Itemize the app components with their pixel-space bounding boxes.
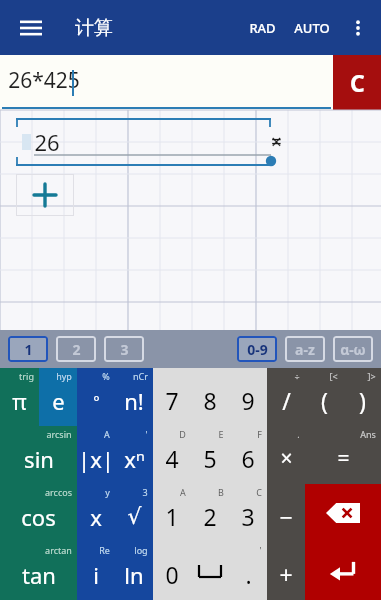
button[interactable]: Menu (14, 11, 48, 45)
button[interactable]: Re (77, 542, 115, 600)
staticText: . (297, 428, 300, 440)
staticText: ɑ-ω (340, 340, 366, 359)
staticText: 9 (241, 385, 255, 416)
staticText: − (279, 501, 293, 532)
button[interactable]: ]> (343, 368, 381, 426)
staticText: √ (127, 504, 142, 530)
button[interactable]: log (115, 542, 153, 600)
staticText: a-z (295, 340, 315, 359)
staticText: RAD (249, 19, 276, 37)
button[interactable]: RAD (240, 11, 285, 45)
staticText: 5 (203, 443, 217, 474)
staticText: 3 (120, 340, 129, 359)
staticText: ' (259, 544, 262, 556)
button[interactable]: Backspace (305, 484, 381, 542)
button[interactable]: arccos (0, 484, 77, 542)
button[interactable]: ' (229, 542, 267, 600)
button[interactable]: B (191, 484, 229, 542)
button[interactable]: Enter (305, 542, 381, 600)
button[interactable]: 3 (104, 336, 144, 362)
button[interactable]: 3 (115, 484, 153, 542)
button[interactable]: More options (339, 9, 377, 47)
staticText: 0-9 (247, 340, 268, 359)
staticText: 1 (165, 501, 179, 532)
button[interactable]: + (267, 542, 305, 600)
staticText: D (179, 428, 186, 440)
button[interactable]: Ans (305, 426, 381, 484)
staticText: y (105, 486, 110, 498)
staticText: + (279, 559, 293, 590)
staticText: trig (19, 370, 34, 382)
staticText: arctan (45, 544, 72, 556)
button[interactable]: arctan (0, 542, 77, 600)
staticText: E (218, 428, 224, 440)
button[interactable]: 26*425 (0, 55, 333, 110)
button[interactable]: 1 (8, 336, 48, 362)
staticText: F (257, 428, 262, 440)
button[interactable]: 9 (229, 368, 267, 426)
staticText: Ans (360, 428, 376, 440)
button[interactable]: C (333, 55, 381, 110)
staticText: ln (124, 560, 144, 590)
button[interactable]: . (267, 426, 305, 484)
button[interactable]: − (267, 484, 305, 542)
button[interactable]: 0 (153, 542, 191, 600)
button[interactable]: ɑ-ω (333, 336, 373, 362)
staticText: ' (145, 428, 148, 440)
staticText: 2 (72, 340, 81, 359)
staticText: 7 (165, 385, 179, 416)
staticText: A (104, 428, 110, 440)
staticText: ]> (367, 370, 376, 382)
button[interactable]: nCr (115, 368, 153, 426)
staticText: sin (24, 444, 54, 474)
staticText: AUTO (294, 19, 330, 37)
staticText: x (90, 502, 102, 532)
button[interactable]: 26 (16, 118, 271, 166)
staticText: nCr (133, 370, 148, 382)
staticText: arccos (45, 486, 72, 498)
staticText: 0 (165, 559, 179, 590)
button[interactable]: [< (305, 368, 343, 426)
staticText: 3 (241, 501, 255, 532)
staticText: ° (93, 391, 100, 411)
staticText: = (337, 444, 350, 473)
staticText: / (282, 385, 291, 416)
button[interactable]: arcsin (0, 426, 77, 484)
button[interactable]: trig (0, 368, 39, 426)
button[interactable]: A (153, 484, 191, 542)
staticText: ( (321, 385, 328, 416)
button[interactable]: AUTO (285, 11, 339, 45)
button[interactable]: Add expression (16, 174, 74, 216)
button[interactable]: 2 (56, 336, 96, 362)
staticText: arcsin (46, 428, 72, 440)
staticText: ) (359, 385, 366, 416)
button[interactable]: A (77, 426, 115, 484)
staticText: Re (99, 544, 110, 556)
button[interactable]: 7 (153, 368, 191, 426)
staticText: n! (124, 386, 144, 416)
staticText: C (350, 67, 365, 98)
button[interactable]: hyp (39, 368, 77, 426)
button[interactable]: 0-9 (237, 336, 277, 362)
staticText: 4 (165, 443, 179, 474)
button[interactable]: % (77, 368, 115, 426)
button[interactable]: E (191, 426, 229, 484)
button[interactable]: 8 (191, 368, 229, 426)
button[interactable]: ' (115, 426, 153, 484)
staticText: 8 (203, 385, 217, 416)
staticText: ÷ (294, 370, 300, 382)
staticText: e (52, 386, 65, 416)
staticText: π (12, 386, 27, 416)
staticText: × (280, 444, 293, 473)
staticText: C (256, 486, 262, 498)
button[interactable]: C (229, 484, 267, 542)
button[interactable]: a-z (285, 336, 325, 362)
staticText: log (134, 544, 148, 556)
button[interactable]: F (229, 426, 267, 484)
button[interactable]: D (153, 426, 191, 484)
button[interactable]: ÷ (267, 368, 305, 426)
button[interactable]: y (77, 484, 115, 542)
staticText: 26*425 (8, 66, 80, 95)
staticText: hyp (56, 370, 72, 382)
button[interactable] (191, 542, 229, 600)
